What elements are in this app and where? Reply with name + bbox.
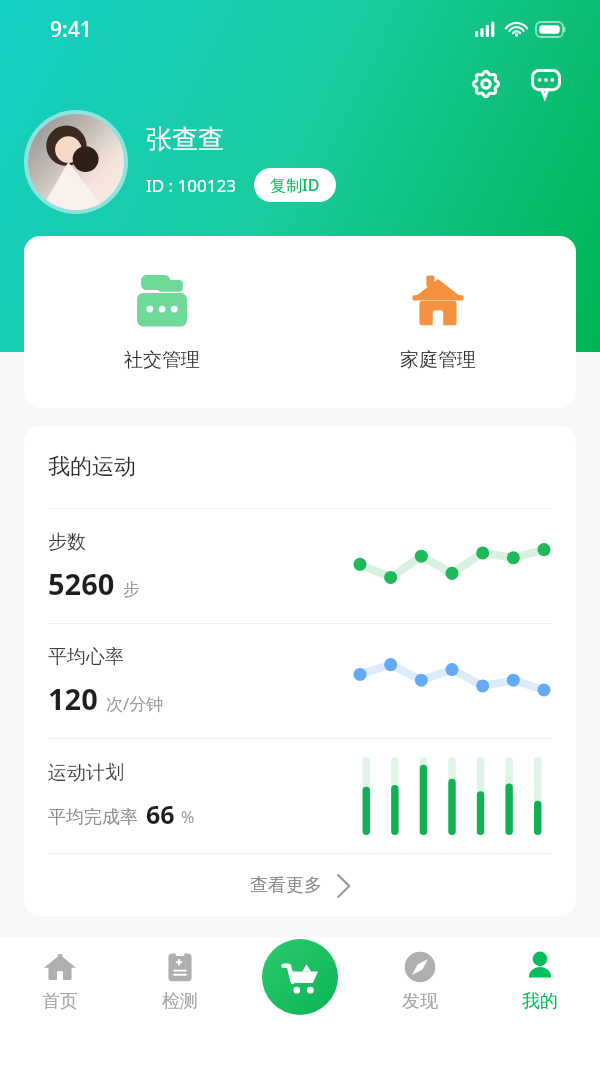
button[interactable]: 平均心率: [24, 624, 576, 738]
button[interactable]: 我的: [480, 937, 600, 1025]
button[interactable]: 运动计划: [24, 739, 576, 853]
staticText: ID : 100123: [146, 174, 236, 197]
button[interactable]: Shop: [262, 939, 338, 1015]
staticText: 5260: [48, 564, 115, 603]
staticText: %: [181, 806, 195, 828]
button[interactable]: 家庭管理: [300, 236, 576, 408]
staticText: 120: [48, 679, 98, 718]
staticText: 平均完成率: [48, 806, 138, 829]
staticText: 社交管理: [124, 348, 200, 372]
button[interactable]: 查看更多: [24, 854, 576, 916]
button[interactable]: 步数: [24, 509, 576, 623]
staticText: 张查查: [146, 123, 224, 156]
button[interactable]: 检测: [120, 937, 240, 1025]
staticText: 次/分钟: [106, 692, 164, 715]
staticText: 检测: [162, 990, 198, 1013]
button[interactable]: Settings: [460, 58, 512, 110]
staticText: 66: [146, 797, 175, 831]
staticText: 首页: [42, 990, 78, 1013]
staticText: 步数: [48, 530, 86, 554]
staticText: 家庭管理: [400, 348, 476, 372]
button[interactable]: 复制ID: [254, 168, 336, 202]
button[interactable]: [24, 110, 128, 214]
staticText: 步: [123, 579, 140, 600]
staticText: 运动计划: [48, 761, 124, 785]
staticText: 我的: [522, 990, 558, 1013]
staticText: 9:41: [50, 15, 92, 44]
staticText: 复制ID: [270, 174, 320, 196]
button[interactable]: 首页: [0, 937, 120, 1025]
staticText: 我的运动: [48, 453, 136, 481]
staticText: 平均心率: [48, 645, 124, 669]
staticText: 发现: [402, 990, 438, 1013]
button[interactable]: More: [520, 58, 572, 110]
button[interactable]: 发现: [360, 937, 480, 1025]
staticText: 查看更多: [250, 874, 322, 897]
button[interactable]: 社交管理: [24, 236, 300, 408]
